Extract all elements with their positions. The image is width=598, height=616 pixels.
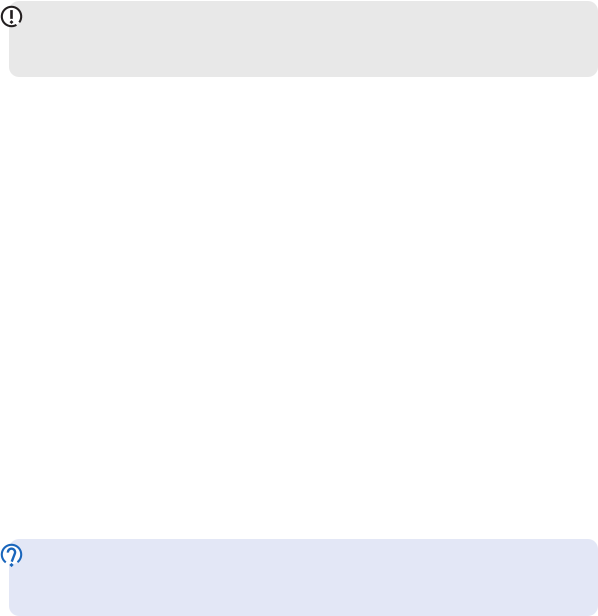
button[interactable] <box>9 1 598 77</box>
button[interactable] <box>9 539 598 616</box>
button[interactable]: Warning <box>1 6 22 27</box>
button[interactable]: Help <box>1 544 22 565</box>
